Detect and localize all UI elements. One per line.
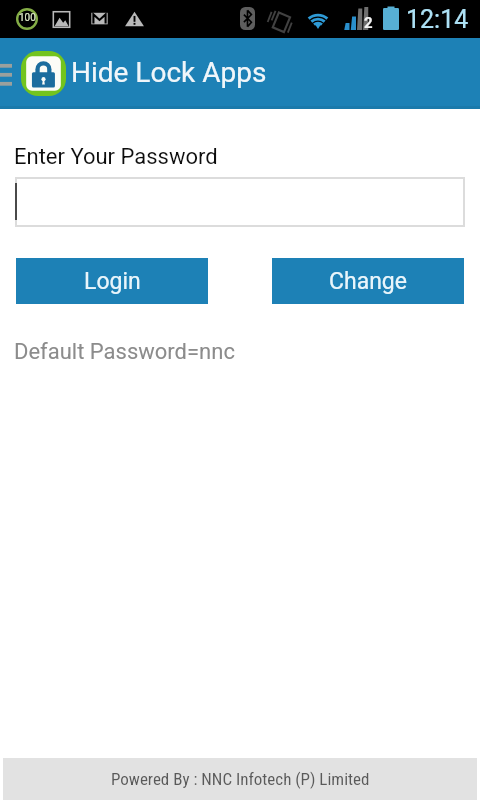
staticText: 100 — [19, 12, 36, 24]
staticText: 2 — [364, 14, 373, 32]
staticText: 12:14 — [406, 5, 469, 34]
staticText: Default Password=nnc — [14, 339, 235, 365]
button[interactable]: Login — [16, 258, 208, 304]
staticText: Change — [329, 268, 407, 295]
staticText: Hide Lock Apps — [71, 56, 267, 89]
staticText: Login — [84, 268, 141, 295]
staticText: Enter Your Password — [14, 144, 218, 170]
button[interactable] — [15, 177, 465, 227]
button[interactable]: Open navigation menu — [0, 56, 16, 92]
staticText: Powered By : NNC Infotech (P) Limited — [111, 769, 370, 789]
button[interactable]: Change — [272, 258, 464, 304]
